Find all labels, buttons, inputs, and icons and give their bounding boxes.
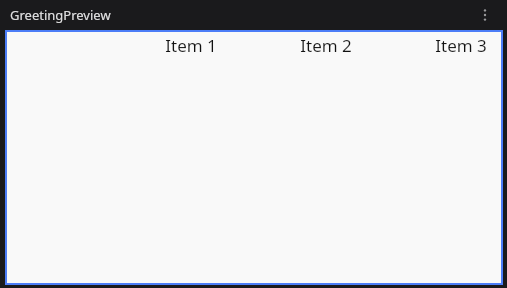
staticText: Item 1 bbox=[165, 34, 217, 56]
staticText: Item 2 bbox=[300, 34, 352, 56]
button[interactable]: Item 3 bbox=[362, 34, 497, 56]
staticText: GreetingPreview bbox=[10, 6, 111, 24]
staticText: Item 3 bbox=[435, 34, 487, 56]
button[interactable]: More options bbox=[474, 4, 496, 26]
button[interactable]: Item 1 bbox=[7, 34, 227, 56]
button[interactable]: Item 2 bbox=[227, 34, 362, 56]
